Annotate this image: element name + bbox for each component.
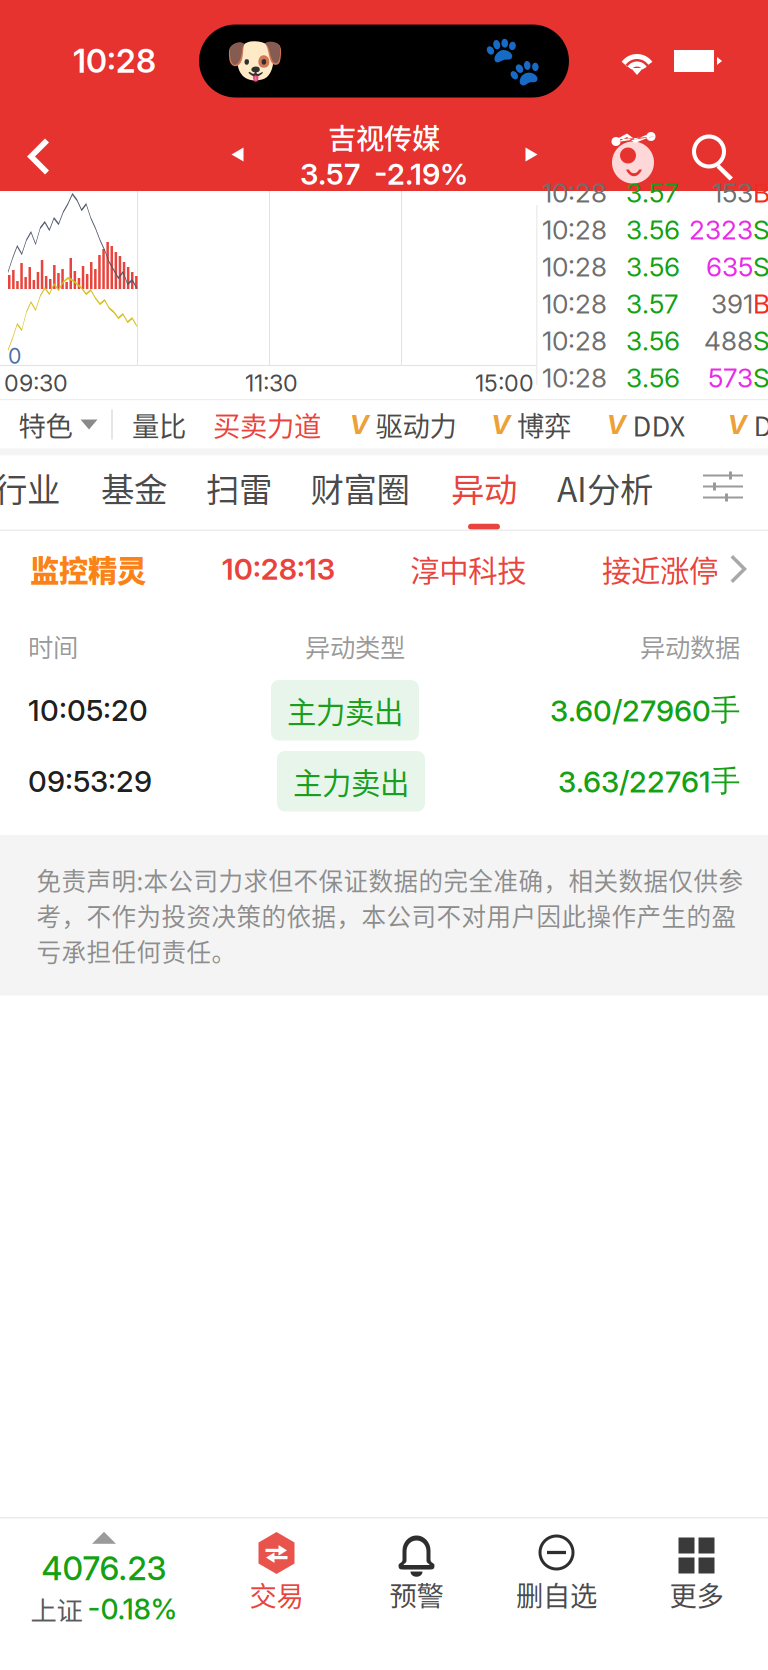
staticText: 淳中科技	[410, 548, 526, 590]
button[interactable]: 预警	[346, 1518, 486, 1633]
staticText: 异动数据	[640, 628, 740, 664]
staticText: B	[753, 288, 768, 320]
button[interactable]: 监控精灵	[0, 531, 768, 607]
button[interactable]: 09:53:29	[0, 751, 768, 822]
staticText: 0	[8, 343, 21, 369]
button[interactable]: 特色	[6, 395, 109, 454]
staticText: 10:28	[542, 177, 607, 209]
staticText: 特色	[18, 405, 72, 444]
staticText: 09:53:29	[28, 763, 152, 799]
button[interactable]: Search	[670, 130, 768, 182]
staticText: 异动类型	[305, 628, 405, 664]
staticText: 扫雷	[206, 463, 272, 512]
button[interactable]: V	[596, 395, 695, 454]
staticText: 基金	[101, 463, 167, 512]
staticText: 主力卖出	[287, 689, 403, 732]
staticText: 10:28	[542, 251, 607, 283]
staticText: V	[727, 409, 746, 440]
staticText: 买卖力道	[213, 405, 321, 444]
button[interactable]: V	[717, 395, 768, 454]
button[interactable]: 财富圈	[296, 449, 423, 538]
staticText: 4076.23	[41, 1549, 166, 1588]
staticText: 量比	[132, 405, 186, 444]
button[interactable]: 更多	[626, 1518, 766, 1633]
button[interactable]: 10:05:20	[0, 680, 768, 751]
staticText: 🐾	[483, 33, 543, 89]
staticText: 10:28	[542, 362, 607, 394]
staticText: 驱动力	[375, 405, 456, 444]
button[interactable]: 量比	[120, 395, 198, 454]
staticText: 3.57	[626, 288, 678, 320]
staticText: 🐶	[225, 33, 285, 89]
button[interactable]: 扫雷	[192, 449, 286, 538]
staticText: 删自选	[516, 1574, 597, 1614]
staticText: 10:05:20	[28, 692, 148, 728]
staticText: 时间	[28, 628, 78, 664]
staticText: 488	[704, 325, 753, 357]
staticText: S	[753, 251, 768, 283]
staticText: 153	[712, 177, 753, 209]
staticText: 11:30	[245, 369, 298, 397]
staticText: 吉视传媒	[328, 116, 440, 158]
staticText: D	[753, 405, 768, 444]
button[interactable]: Back	[0, 123, 68, 189]
staticText: 10:28	[542, 214, 607, 246]
button[interactable]: 删自选	[486, 1518, 626, 1633]
staticText: V	[606, 409, 625, 440]
staticText: 预警	[389, 1574, 443, 1614]
staticText: 3.63/22761手	[558, 763, 740, 800]
staticText: 免责声明:本公司力求但不保证数据的完全准确，相关数据仅供参考，不作为投资决策的依…	[36, 862, 743, 968]
staticText: 监控精灵	[30, 548, 146, 590]
button[interactable]: 买卖力道	[201, 395, 333, 454]
staticText: 573	[708, 362, 753, 394]
staticText: 接近涨停	[602, 548, 718, 590]
staticText: 391	[711, 288, 753, 320]
staticText: 635	[706, 251, 753, 283]
staticText: 3.57	[626, 177, 678, 209]
staticText: 09:30	[4, 369, 68, 397]
button[interactable]: 异动	[437, 449, 531, 538]
button[interactable]: Filter	[689, 456, 755, 514]
staticText: S	[753, 214, 768, 246]
staticText: 10:28	[73, 41, 156, 81]
staticText: AI分析	[557, 463, 653, 512]
staticText: 10:28:13	[222, 551, 335, 587]
staticText: 3.56	[626, 325, 680, 357]
staticText: S	[753, 362, 768, 394]
staticText: 10:28	[542, 325, 607, 357]
button[interactable]: AI分析	[543, 449, 667, 538]
staticText: 3.60/27960手	[550, 692, 740, 729]
staticText: 3.56	[626, 214, 680, 246]
staticText: 上证	[30, 1590, 82, 1628]
staticText: 3.56	[626, 251, 680, 283]
staticText: V	[491, 409, 510, 440]
staticText: 财富圈	[310, 463, 409, 512]
staticText: B	[753, 177, 768, 209]
button[interactable]: Shanghai Index	[1, 1518, 206, 1633]
staticText: DDX	[632, 405, 685, 444]
button[interactable]: 交易	[206, 1518, 346, 1633]
staticText: -0.18%	[87, 1592, 177, 1626]
button[interactable]: V	[339, 395, 466, 454]
staticText: 15:00	[475, 369, 534, 397]
staticText: 3.57 -2.19%	[300, 156, 468, 192]
button[interactable]: 行业	[0, 449, 74, 538]
staticText: 行业	[0, 463, 60, 512]
staticText: 主力卖出	[293, 760, 409, 803]
staticText: 2323	[689, 214, 753, 246]
staticText: 交易	[249, 1574, 303, 1614]
staticText: 更多	[669, 1574, 723, 1614]
staticText: V	[349, 409, 368, 440]
button[interactable]: 基金	[87, 449, 181, 538]
staticText: S	[753, 325, 768, 357]
button[interactable]: V	[481, 395, 581, 454]
staticText: 异动	[451, 463, 517, 512]
staticText: 10:28	[542, 288, 607, 320]
staticText: 博弈	[517, 405, 571, 444]
staticText: 3.56	[626, 362, 680, 394]
button[interactable]: Assistant	[596, 127, 670, 185]
